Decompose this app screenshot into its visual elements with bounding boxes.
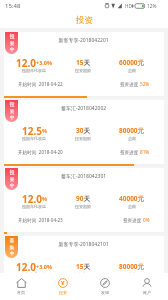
staticText: 15:48	[5, 2, 21, 10]
staticText: 总额	[128, 136, 136, 141]
staticText: 预期年化收益	[22, 272, 46, 277]
staticText: 12.0	[16, 260, 36, 271]
staticText: 总额	[128, 204, 136, 209]
staticText: 投资中	[9, 34, 15, 52]
staticText: 12.0	[16, 56, 36, 67]
staticText: %	[42, 195, 47, 202]
staticText: %	[42, 127, 47, 134]
staticText: 开始时间 2018-04-22	[18, 81, 63, 87]
staticText: 开始时间 2018-04-20	[18, 149, 63, 155]
staticText: 账户	[143, 290, 151, 295]
staticText: 投资进度	[120, 81, 140, 87]
staticText: 新客专享-2018042101	[4, 241, 163, 248]
staticText: 募集中	[9, 238, 15, 256]
staticText: 90天	[76, 194, 90, 203]
staticText: 首页	[17, 290, 25, 295]
staticText: 投资中	[9, 170, 15, 188]
staticText: 40000元	[119, 194, 145, 203]
staticText: 15天	[76, 58, 90, 67]
button[interactable]: 投资中	[4, 168, 164, 234]
button[interactable]: Home	[0, 273, 42, 300]
staticText: 投资	[59, 290, 67, 295]
staticText: 12.5	[22, 124, 42, 135]
staticText: 投资期限	[75, 136, 91, 141]
staticText: 12%	[147, 3, 157, 10]
staticText: 蓄车汇-2018042002	[4, 105, 163, 112]
staticText: 30天	[76, 126, 90, 135]
staticText: ¥	[61, 279, 65, 287]
staticText: 发现	[101, 290, 109, 295]
staticText: 预期年化收益	[22, 204, 46, 209]
staticText: 投资进度	[123, 285, 143, 291]
button[interactable]: 投资中	[4, 32, 164, 98]
staticText: 12.0	[22, 192, 42, 203]
staticText: 0%	[143, 217, 150, 223]
button[interactable]: 投资中	[4, 100, 164, 166]
staticText: 81%	[140, 149, 150, 155]
staticText: 开始时间 2018-04-23	[18, 217, 63, 223]
staticText: 80000元	[119, 126, 145, 135]
staticText: HD	[125, 3, 132, 9]
staticText: 预期年化收益	[22, 68, 46, 73]
staticText: 投资期限	[75, 68, 91, 73]
button[interactable]: Account	[126, 273, 168, 300]
staticText: 预期年化收益	[22, 136, 46, 141]
staticText: 投资进度	[120, 149, 140, 155]
staticText: 80000元	[119, 262, 145, 271]
staticText: 总额	[128, 272, 136, 277]
staticText: 15天	[76, 262, 90, 271]
staticText: 投资期限	[75, 204, 91, 209]
staticText: 0%	[143, 285, 150, 291]
staticText: 投资中	[9, 102, 15, 120]
staticText: 52%	[140, 81, 150, 87]
staticText: 60000元	[119, 58, 145, 67]
button[interactable]: 投资	[0, 12, 168, 28]
button[interactable]: Invest	[42, 273, 84, 300]
staticText: +3.0%	[36, 59, 52, 66]
staticText: 开始时间 2018-04-21	[18, 285, 63, 291]
button[interactable]: Discover	[84, 273, 126, 300]
staticText: 投资	[76, 15, 93, 26]
staticText: 总额	[128, 68, 136, 73]
staticText: 蓄车汇-2018042301	[4, 173, 163, 180]
staticText: 新客专享-2018042201	[4, 37, 163, 44]
button[interactable]: 募集中	[4, 236, 164, 300]
staticText: +3.0%	[36, 263, 52, 270]
staticText: 投资进度	[123, 217, 143, 223]
